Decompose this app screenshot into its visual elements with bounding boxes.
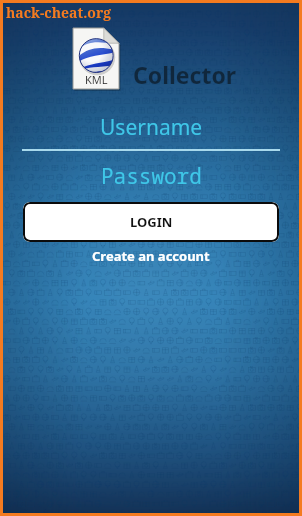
button[interactable]: Password: [0, 162, 302, 188]
staticText: Create an account: [92, 247, 210, 265]
staticText: LOGIN: [130, 213, 173, 231]
staticText: Collector: [133, 59, 237, 90]
staticText: KML: [85, 72, 108, 87]
button[interactable]: LOGIN: [23, 202, 279, 242]
staticText: Username: [100, 113, 203, 142]
staticText: Password: [101, 162, 202, 188]
staticText: hack-cheat.org: [6, 3, 112, 22]
button[interactable]: Create an account: [86, 245, 216, 267]
button[interactable]: Username: [0, 111, 302, 149]
